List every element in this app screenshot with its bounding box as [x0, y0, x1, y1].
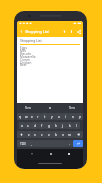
button[interactable]: t: [41, 113, 48, 120]
staticText: d: [34, 124, 36, 128]
button[interactable]: ?123: [17, 140, 28, 147]
button[interactable]: k: [66, 122, 73, 129]
staticText: ,: [31, 142, 32, 146]
button[interactable]: New: [61, 103, 83, 112]
button[interactable]: f: [38, 122, 45, 129]
staticText: New: [69, 106, 75, 110]
button[interactable]: l: [73, 122, 80, 129]
button[interactable]: Mozzarella: [20, 55, 80, 59]
button[interactable]: a: [19, 122, 25, 129]
staticText: e: [31, 115, 33, 119]
button[interactable]: Eggs: [20, 46, 80, 50]
staticText: s: [27, 124, 29, 128]
staticText: i: [65, 115, 66, 119]
button[interactable]: Back: [28, 150, 35, 157]
button[interactable]: s: [25, 122, 31, 129]
button[interactable]: r: [35, 113, 41, 120]
button[interactable]: n: [59, 131, 66, 138]
staticText: g: [48, 124, 50, 128]
button[interactable]: z: [26, 131, 32, 138]
staticText: n: [62, 133, 64, 137]
button[interactable]: b: [52, 131, 59, 138]
button[interactable]: Backspace: [73, 131, 83, 138]
button[interactable]: New: [17, 103, 39, 112]
staticText: u: [58, 115, 60, 119]
button[interactable]: .: [66, 140, 73, 147]
staticText: m: [68, 133, 71, 137]
button[interactable]: Cream: [20, 58, 80, 62]
button[interactable]: c: [38, 131, 45, 138]
staticText: a: [21, 124, 23, 128]
button[interactable]: ,: [28, 140, 35, 147]
button[interactable]: Delete: [61, 28, 68, 35]
staticText: ?123: [20, 142, 26, 146]
button[interactable]: Milk: [20, 49, 80, 53]
button[interactable]: d: [31, 122, 38, 129]
button[interactable]: e: [29, 113, 35, 120]
button[interactable]: h: [52, 122, 59, 129]
button[interactable]: Home: [47, 150, 54, 157]
staticText: v: [48, 133, 50, 137]
button[interactable]: Share: [75, 28, 82, 35]
button[interactable]: j: [59, 122, 66, 129]
staticText: x: [34, 133, 36, 137]
staticText: o: [72, 115, 74, 119]
button[interactable]: o: [69, 113, 76, 120]
staticText: p: [79, 115, 81, 119]
button[interactable]: Suggestion: [39, 103, 61, 112]
staticText: Shopping List: [25, 29, 49, 34]
staticText: h: [55, 124, 57, 128]
staticText: b: [55, 133, 57, 137]
button[interactable]: p: [76, 113, 83, 120]
button[interactable]: Shift: [17, 131, 26, 138]
staticText: r: [37, 115, 39, 119]
button[interactable]: Back: [18, 28, 24, 34]
button[interactable]: More options: [68, 28, 75, 35]
button[interactable]: y: [48, 113, 55, 120]
button[interactable]: w: [23, 113, 29, 120]
staticText: l: [76, 124, 77, 128]
button[interactable]: i: [62, 113, 69, 120]
staticText: .: [69, 142, 70, 146]
button[interactable]: Beer: [20, 63, 80, 67]
staticText: w: [25, 115, 28, 119]
button[interactable]: Enter: [73, 140, 83, 147]
staticText: c: [41, 133, 43, 137]
button[interactable]: v: [45, 131, 52, 138]
button[interactable]: x: [32, 131, 38, 138]
staticText: j: [62, 124, 63, 128]
staticText: f: [41, 124, 43, 128]
button[interactable]: m: [66, 131, 73, 138]
button[interactable]: Chicken: [20, 61, 80, 65]
staticText: t: [44, 115, 46, 119]
staticText: z: [28, 133, 30, 137]
staticText: k: [69, 124, 71, 128]
button[interactable]: Recents: [65, 150, 72, 157]
button[interactable]: g: [45, 122, 52, 129]
button[interactable]: Biscuits: [20, 52, 80, 56]
button[interactable]: Shopping List: [20, 38, 80, 43]
button[interactable]: u: [55, 113, 62, 120]
staticText: q: [19, 115, 21, 119]
staticText: New: [25, 106, 31, 110]
staticText: y: [51, 115, 53, 119]
button[interactable]: q: [17, 113, 23, 120]
